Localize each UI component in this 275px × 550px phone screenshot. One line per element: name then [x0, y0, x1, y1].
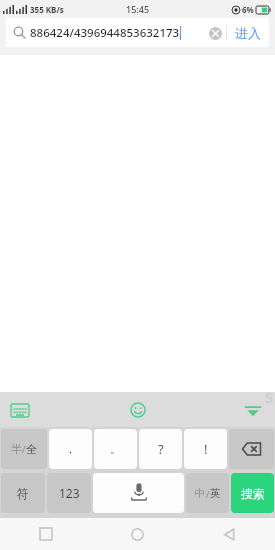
- staticText: 半: [11, 442, 22, 456]
- button[interactable]: ?: [139, 429, 182, 469]
- staticText: ，: [65, 442, 76, 456]
- staticText: 123: [59, 485, 80, 501]
- button[interactable]: Clear text: [204, 22, 226, 44]
- staticText: 英: [210, 487, 221, 500]
- staticText: /: [22, 443, 26, 456]
- staticText: S: [265, 387, 274, 407]
- button[interactable]: Backspace: [229, 429, 274, 469]
- button[interactable]: 中: [186, 473, 229, 513]
- staticText: ?: [158, 440, 164, 458]
- staticText: 全: [26, 442, 37, 456]
- button[interactable]: 进入: [227, 18, 269, 47]
- staticText: 符: [17, 486, 29, 501]
- button[interactable]: 搜索: [231, 473, 274, 513]
- button[interactable]: Emoji: [124, 396, 152, 424]
- button[interactable]: Back: [183, 518, 275, 550]
- button[interactable]: 符: [1, 473, 45, 513]
- staticText: 。: [110, 442, 121, 456]
- staticText: 搜索: [241, 486, 265, 501]
- button[interactable]: 半: [1, 429, 47, 469]
- button[interactable]: 。: [94, 429, 137, 469]
- staticText: !: [204, 440, 208, 458]
- staticText: 中: [195, 487, 206, 500]
- staticText: 15:45: [126, 3, 150, 15]
- staticText: 886424/4396944853632173: [30, 25, 180, 41]
- button[interactable]: Space, voice input: [93, 473, 184, 513]
- button[interactable]: Hide keyboard: [239, 396, 267, 424]
- button[interactable]: Home: [91, 518, 183, 550]
- staticText: 进入: [235, 25, 261, 41]
- staticText: 6%: [242, 4, 254, 15]
- button[interactable]: 123: [47, 473, 91, 513]
- staticText: 355 KB/s: [30, 4, 64, 15]
- staticText: /: [206, 488, 210, 500]
- button[interactable]: !: [184, 429, 227, 469]
- button[interactable]: Keyboard layouts: [6, 396, 34, 424]
- button[interactable]: ，: [49, 429, 92, 469]
- button[interactable]: Recent apps: [0, 518, 91, 550]
